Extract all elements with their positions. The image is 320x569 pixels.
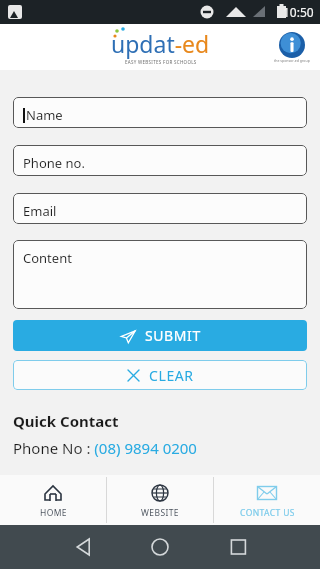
staticText: WEBSITE <box>141 507 179 519</box>
staticText: updat-ed <box>111 28 210 59</box>
button[interactable]: Phone no. <box>13 145 307 176</box>
button[interactable]: Name <box>13 97 307 128</box>
staticText: SUBMIT <box>145 326 201 345</box>
button[interactable]: HOME <box>0 475 106 525</box>
staticText: Phone no. <box>23 154 85 172</box>
button[interactable]: Phone No : (08) 9894 0200 <box>13 438 197 458</box>
button[interactable]: Email <box>13 193 307 224</box>
staticText: the sponsor-ed group <box>274 58 310 63</box>
button[interactable]: CONTACT US <box>214 475 320 525</box>
staticText: 10:50 <box>283 4 314 20</box>
button[interactable]: Sponsor-ed group <box>274 32 310 63</box>
staticText: EASY WEBSITES FOR SCHOOLS <box>125 59 197 65</box>
button[interactable]: WEBSITE <box>107 475 213 525</box>
staticText: Content <box>23 249 72 267</box>
button[interactable]: SUBMIT <box>13 320 307 351</box>
staticText: Name <box>26 106 63 124</box>
staticText: HOME <box>40 507 67 519</box>
staticText: CLEAR <box>149 366 194 385</box>
staticText: Email <box>23 202 57 220</box>
button[interactable]: CLEAR <box>13 360 307 390</box>
staticText: Quick Contact <box>13 411 119 431</box>
button[interactable]: Content <box>13 240 307 309</box>
staticText: CONTACT US <box>240 507 295 519</box>
